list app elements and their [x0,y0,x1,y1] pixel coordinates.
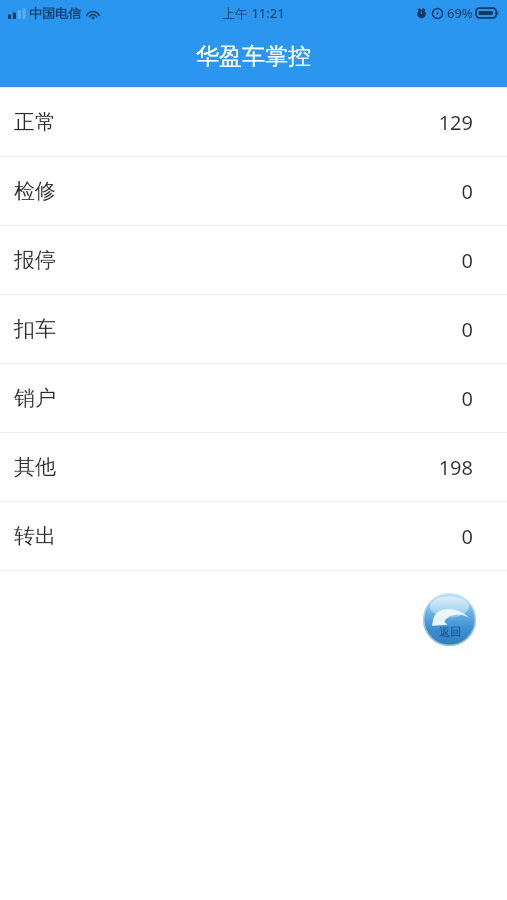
staticText: 0 [461,523,473,550]
staticText: 69% [447,4,473,22]
staticText: 0 [461,178,473,205]
staticText: 上午 11:21 [222,4,285,22]
staticText: 0 [461,385,473,412]
button[interactable]: 其他 [0,433,507,501]
staticText: 其他 [14,454,56,480]
staticText: 198 [438,454,473,481]
staticText: 扣车 [14,316,56,342]
staticText: 中国电信 [29,5,81,21]
staticText: 检修 [14,178,56,204]
staticText: 正常 [14,109,56,135]
staticText: 129 [438,109,473,136]
button[interactable]: 正常 [0,88,507,156]
staticText: 返回 [439,625,461,639]
button[interactable]: 报停 [0,226,507,294]
button[interactable]: 销户 [0,364,507,432]
staticText: 报停 [14,247,56,273]
button[interactable]: 检修 [0,157,507,225]
staticText: 0 [461,316,473,343]
staticText: 0 [461,247,473,274]
button[interactable]: 返回 [423,593,476,646]
button[interactable]: 转出 [0,502,507,570]
staticText: 销户 [14,385,56,411]
staticText: 转出 [14,523,56,549]
staticText: 华盈车掌控 [196,42,311,71]
button[interactable]: 扣车 [0,295,507,363]
